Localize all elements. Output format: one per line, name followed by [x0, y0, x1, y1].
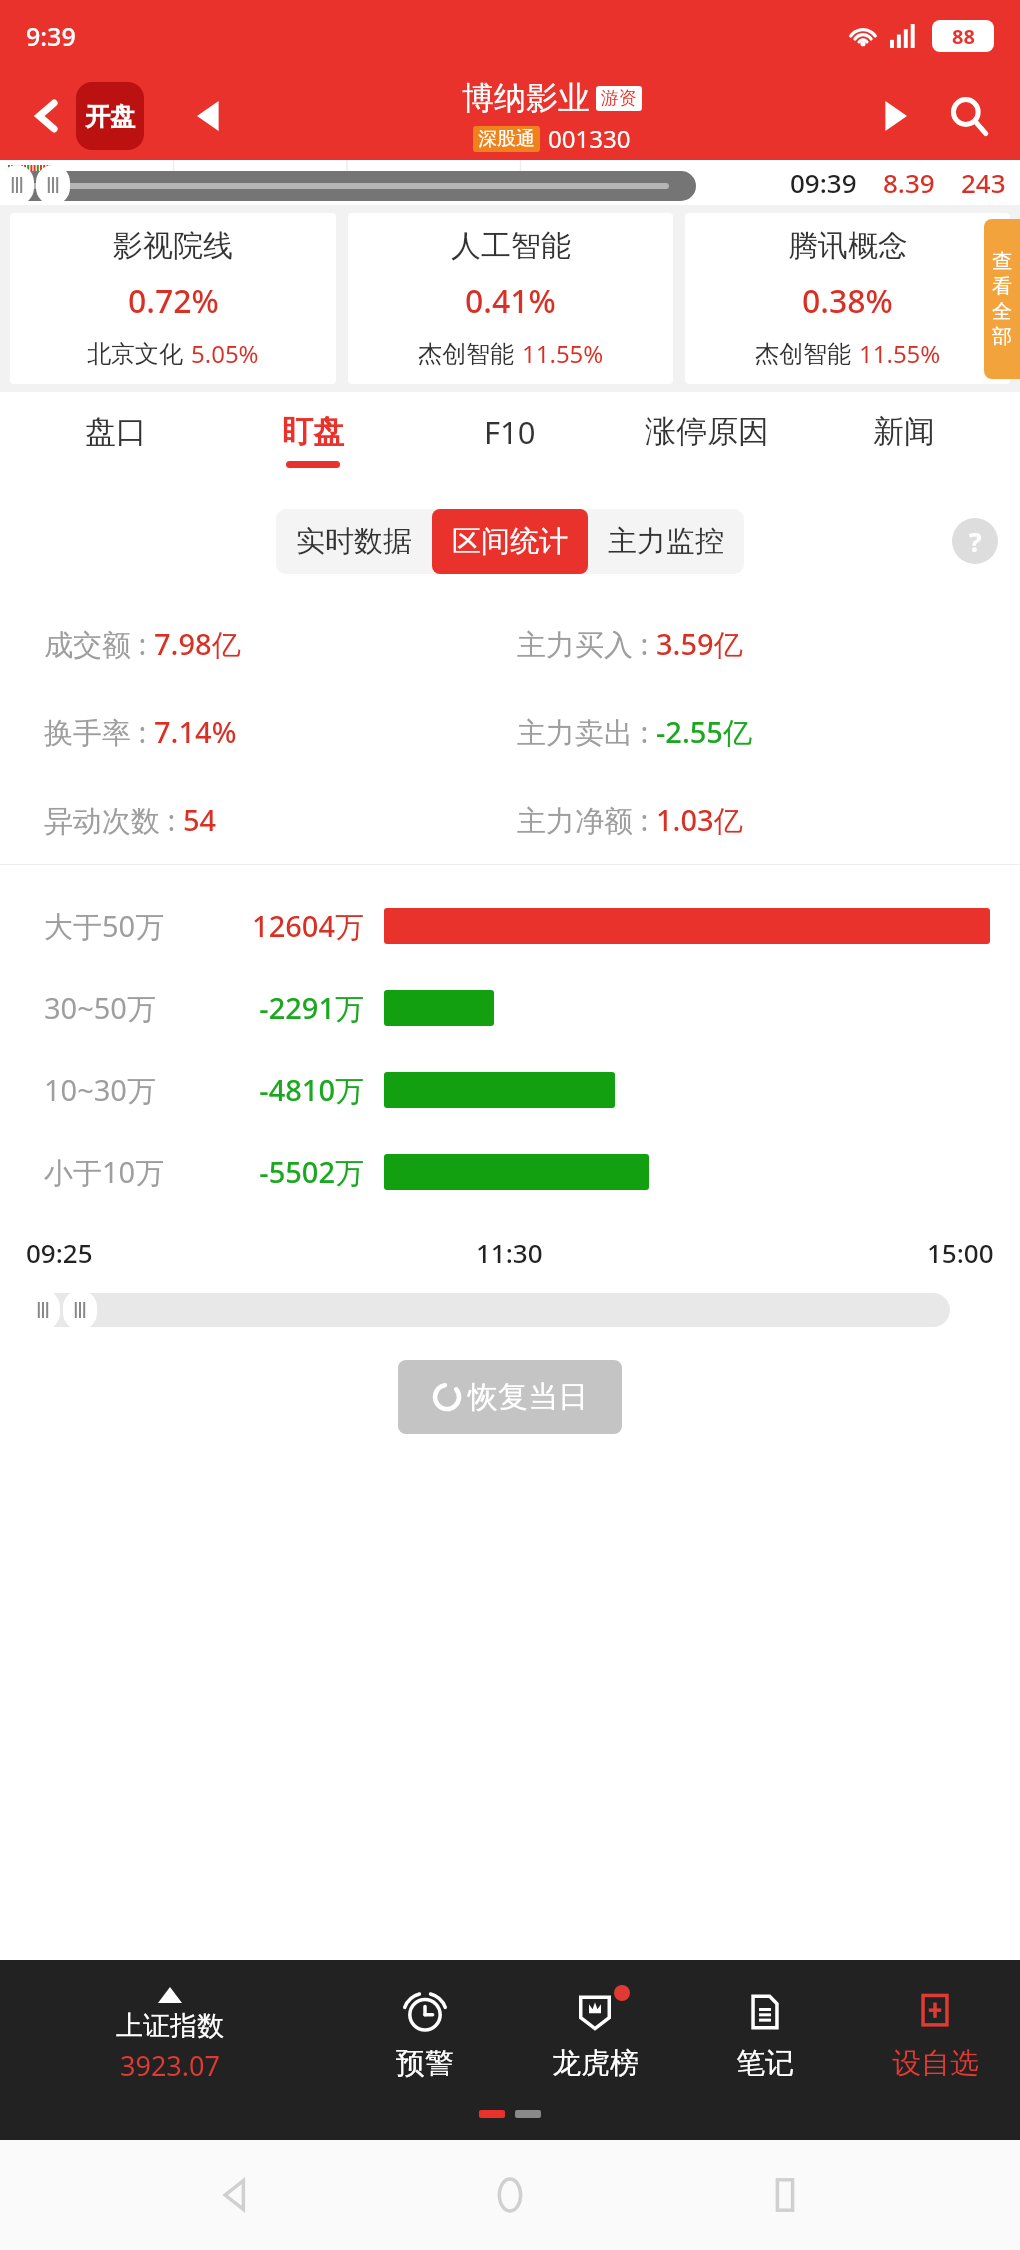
button[interactable]: 新闻 [805, 392, 1002, 488]
staticText: 腾讯概念 [788, 227, 908, 265]
staticText: 0.38% [802, 279, 893, 323]
staticText: 主力卖出 : [517, 712, 656, 752]
button[interactable]: Range handle [26, 1290, 60, 1330]
staticText: 大于50万 [44, 906, 165, 946]
staticText: 3.59亿 [656, 624, 743, 664]
staticText: 人工智能 [451, 227, 571, 265]
button[interactable]: F10 [411, 392, 608, 488]
staticText: 88 [952, 23, 975, 50]
button[interactable]: 开盘 [76, 82, 144, 150]
staticText: 1.03亿 [656, 800, 743, 840]
staticText: 主力净额 : [517, 800, 656, 840]
button[interactable]: 实时数据 [276, 509, 432, 574]
staticText: 0.41% [465, 279, 556, 323]
button[interactable]: Next stock [866, 87, 924, 145]
button[interactable]: Home [470, 2155, 550, 2235]
staticText: 15:00 [927, 1235, 994, 1270]
button[interactable]: Help [952, 518, 998, 564]
staticText: -2291万 [219, 988, 364, 1028]
staticText: 243 [961, 165, 1006, 200]
staticText: 09:25 [26, 1235, 93, 1270]
button[interactable]: 主力监控 [588, 509, 744, 574]
staticText: 盘口 [85, 412, 147, 451]
staticText: 查 [992, 249, 1012, 274]
staticText: 涨停原因 [645, 412, 769, 451]
staticText: 11.55% [859, 337, 941, 370]
button[interactable]: Recents [745, 2155, 825, 2235]
button[interactable]: Back [20, 88, 76, 144]
staticText: 北京文化 [87, 339, 183, 369]
staticText: 新闻 [873, 412, 935, 451]
staticText: 7.98亿 [154, 624, 241, 664]
button[interactable]: 人工智能 [348, 213, 673, 384]
staticText: 预警 [396, 2045, 454, 2082]
staticText: 10~30万 [44, 1070, 156, 1110]
button[interactable]: 区间统计 [432, 509, 588, 574]
button[interactable]: Range handle [0, 165, 34, 205]
staticText: 上证指数 [116, 2009, 224, 2043]
staticText: 游资 [601, 87, 637, 110]
button[interactable]: 查 [984, 219, 1020, 379]
button[interactable]: 设自选 [850, 1960, 1020, 2110]
staticText: 开盘 [85, 101, 135, 132]
staticText: 实时数据 [296, 523, 412, 560]
staticText: 3923.07 [120, 2047, 220, 2084]
staticText: 区间统计 [452, 523, 568, 560]
staticText: F10 [484, 411, 536, 453]
staticText: 影视院线 [113, 227, 233, 265]
button[interactable]: 盯盘 [214, 392, 411, 488]
staticText: 设自选 [892, 2045, 979, 2082]
staticText: 深股通 [478, 127, 535, 151]
button[interactable]: 影视院线 [10, 213, 336, 384]
staticText: 09:39 [790, 165, 857, 200]
staticText: 盯盘 [282, 412, 344, 451]
staticText: 笔记 [736, 2045, 794, 2082]
staticText: 5.05% [191, 337, 259, 370]
button[interactable]: 预警 [340, 1960, 510, 2110]
staticText: 0.72% [128, 279, 219, 323]
button[interactable]: 上证指数 [0, 1960, 340, 2110]
staticText: 11.55% [522, 337, 604, 370]
staticText: 12604万 [219, 906, 364, 946]
staticText: 30~50万 [44, 988, 156, 1028]
staticText: 看 [992, 274, 1012, 299]
staticText: -2.55亿 [656, 712, 752, 752]
button[interactable]: Back [195, 2155, 275, 2235]
staticText: 8.39 [883, 165, 935, 200]
staticText: 部 [992, 324, 1012, 349]
button[interactable]: 恢复当日 [398, 1360, 622, 1434]
staticText: 杰创智能 [755, 339, 851, 369]
staticText: 恢复当日 [468, 1378, 588, 1416]
staticText: -5502万 [219, 1152, 364, 1192]
staticText: 全 [992, 299, 1012, 324]
staticText: ? [969, 524, 982, 559]
staticText: 异动次数 : [44, 800, 183, 840]
staticText: 主力监控 [608, 523, 724, 560]
staticText: 换手率 : [44, 712, 154, 752]
staticText: 9:39 [26, 19, 76, 53]
staticText: 11:30 [476, 1235, 543, 1270]
staticText: -4810万 [219, 1070, 364, 1110]
staticText: 博纳影业 [462, 78, 590, 118]
button[interactable]: 腾讯概念 [685, 213, 1010, 384]
button[interactable]: 盘口 [18, 392, 214, 488]
staticText: 54 [183, 800, 217, 839]
button[interactable]: Range handle [63, 1290, 97, 1330]
staticText: 001330 [548, 122, 631, 155]
button[interactable]: 龙虎榜 [510, 1960, 680, 2110]
staticText: 龙虎榜 [552, 2045, 639, 2082]
button[interactable]: Search [938, 85, 1000, 147]
button[interactable]: 涨停原因 [608, 392, 805, 488]
button[interactable]: 笔记 [680, 1960, 850, 2110]
staticText: 7.14% [154, 712, 237, 751]
staticText: 杰创智能 [418, 339, 514, 369]
staticText: 成交额 : [44, 624, 154, 664]
staticText: 主力买入 : [517, 624, 656, 664]
button[interactable]: Range handle [36, 165, 70, 205]
button[interactable]: Previous stock [180, 87, 238, 145]
staticText: 小于10万 [44, 1152, 165, 1192]
